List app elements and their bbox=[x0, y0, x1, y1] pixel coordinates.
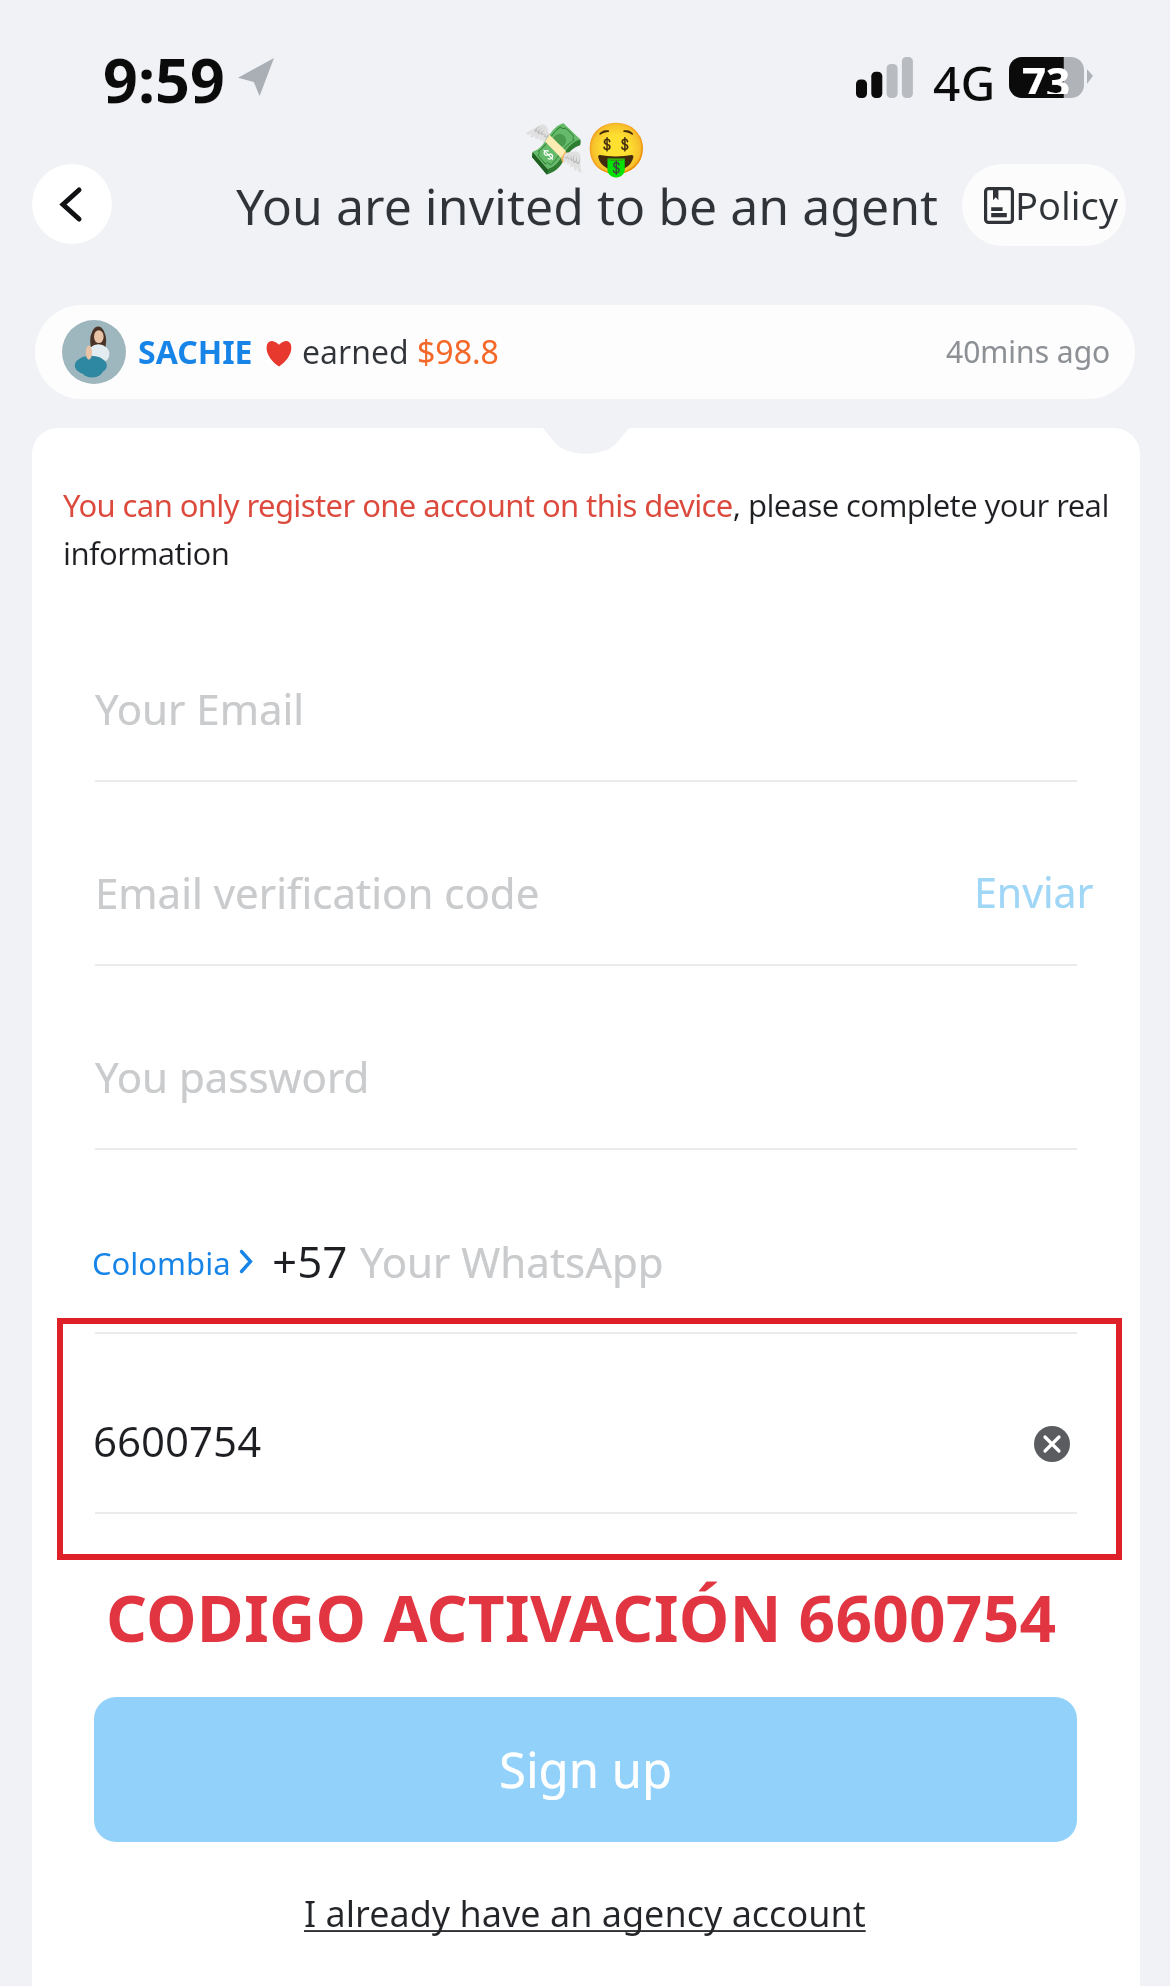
staticText: earned $98.8 bbox=[302, 330, 499, 374]
button[interactable]: You password bbox=[95, 1020, 1077, 1138]
button[interactable]: Back bbox=[32, 164, 112, 244]
staticText: Colombia bbox=[92, 1242, 231, 1284]
button[interactable]: Clear bbox=[1034, 1426, 1070, 1462]
staticText: CODIGO ACTIVACIÓN 6600754 bbox=[106, 1574, 1057, 1661]
button[interactable]: Your Email bbox=[95, 652, 1077, 770]
staticText: 40mins ago bbox=[946, 331, 1111, 372]
button[interactable]: Policy bbox=[962, 164, 1126, 246]
button[interactable]: Email verification code bbox=[95, 836, 955, 954]
staticText: You are invited to be an agent bbox=[236, 172, 939, 240]
staticText: You password bbox=[95, 1048, 370, 1105]
staticText: You can only register one account on thi… bbox=[63, 484, 1118, 574]
button[interactable]: SACHIE bbox=[35, 305, 1135, 399]
button[interactable]: Sign up bbox=[94, 1697, 1077, 1842]
button[interactable]: 6600754 bbox=[95, 1384, 995, 1502]
button[interactable]: Colombia bbox=[92, 1242, 252, 1284]
staticText: 4G bbox=[933, 50, 996, 115]
staticText: 6600754 bbox=[93, 1412, 262, 1469]
staticText: Your Email bbox=[95, 680, 305, 737]
staticText: 9:59 bbox=[103, 38, 225, 121]
staticText: Policy bbox=[1015, 179, 1119, 231]
button[interactable]: I already have an agency account bbox=[304, 1889, 866, 1938]
staticText: SACHIE bbox=[138, 330, 253, 374]
staticText: Your WhatsApp bbox=[360, 1233, 664, 1290]
staticText: 73 bbox=[1022, 53, 1071, 94]
button[interactable]: Enviar bbox=[974, 864, 1094, 920]
staticText: 💸🤑 bbox=[523, 120, 648, 179]
staticText: Sign up bbox=[499, 1736, 673, 1803]
staticText: Email verification code bbox=[95, 864, 540, 921]
staticText: +57 bbox=[272, 1231, 348, 1291]
